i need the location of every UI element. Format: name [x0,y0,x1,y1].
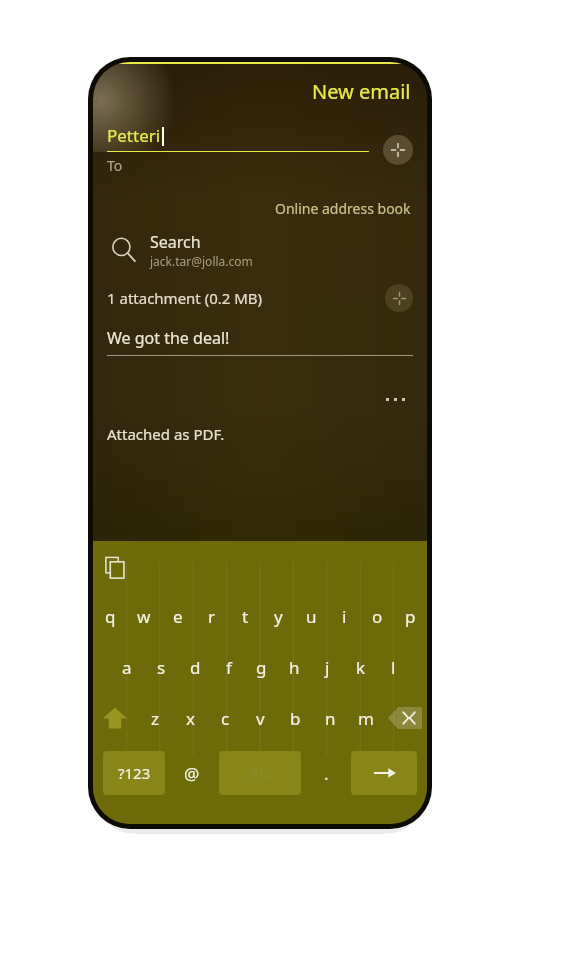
button[interactable]: y [262,597,295,635]
button[interactable]: x [173,699,208,737]
button[interactable]: . [301,751,351,795]
button[interactable]: u [295,597,328,635]
button[interactable]: Add recipient [383,135,413,165]
staticText: EN [251,764,270,783]
button[interactable]: s [144,648,178,686]
staticText: n [325,707,336,730]
staticText: q [105,605,116,628]
button[interactable]: n [313,699,348,737]
staticText: x [186,707,195,730]
staticText: g [256,656,267,679]
staticText: @ [184,762,200,785]
button[interactable]: ?123 [103,751,165,795]
button[interactable]: t [229,597,262,635]
button[interactable]: j [311,648,344,686]
staticText: v [256,707,265,730]
button[interactable]: g [245,648,278,686]
staticText: Petteri [107,124,161,147]
button[interactable]: e [161,597,195,635]
staticText: 1 attachment (0.2 MB) [107,288,385,308]
button[interactable]: h [278,648,311,686]
button[interactable]: q [93,597,127,635]
staticText: j [325,656,330,679]
staticText: l [391,656,396,679]
staticText: We got the deal! [107,327,230,349]
button[interactable]: Search [93,231,427,269]
staticText: c [221,707,230,730]
staticText: z [151,707,159,730]
staticText: u [306,605,317,628]
staticText: h [289,656,300,679]
staticText: To [107,156,123,175]
staticText: ?123 [118,763,151,783]
button[interactable]: k [344,648,377,686]
button[interactable]: Backspace [383,699,427,737]
button[interactable]: Shift [93,699,137,737]
button[interactable]: More options [93,398,405,401]
staticText: r [208,605,216,628]
staticText: k [356,656,366,679]
staticText: t [242,605,249,628]
button[interactable]: o [361,597,394,635]
staticText: m [358,707,374,730]
button[interactable]: r [195,597,229,635]
staticText: jack.tar@jolla.com [150,253,253,269]
staticText: d [190,656,201,679]
button[interactable]: Clipboard [105,551,139,585]
button[interactable]: f [212,648,245,686]
button[interactable]: We got the deal! [93,327,427,356]
staticText: s [157,656,166,679]
button[interactable]: b [278,699,313,737]
staticText: e [173,605,183,628]
staticText: Attached as PDF. [107,424,225,444]
staticText: b [290,707,301,730]
staticText: Online address book [275,199,411,218]
staticText: y [274,605,283,628]
staticText: o [372,605,383,628]
button[interactable]: p [394,597,427,635]
button[interactable]: d [178,648,212,686]
button[interactable]: Enter [351,751,417,795]
button[interactable]: m [348,699,383,737]
button[interactable]: w [127,597,161,635]
staticText: i [342,605,347,628]
button[interactable]: c [208,699,243,737]
staticText: w [137,605,151,628]
staticText: . [324,762,329,785]
button[interactable]: l [377,648,410,686]
button[interactable]: i [328,597,361,635]
staticText: New email [312,78,411,105]
button[interactable]: a [110,648,144,686]
button[interactable]: Add attachment [385,284,413,312]
staticText: a [122,656,132,679]
button[interactable]: z [137,699,173,737]
button[interactable]: Online address book [93,199,427,218]
staticText: p [405,605,416,628]
staticText: Search [150,231,201,253]
staticText: f [226,656,232,679]
button[interactable]: @ [165,751,219,795]
button[interactable]: v [243,699,278,737]
